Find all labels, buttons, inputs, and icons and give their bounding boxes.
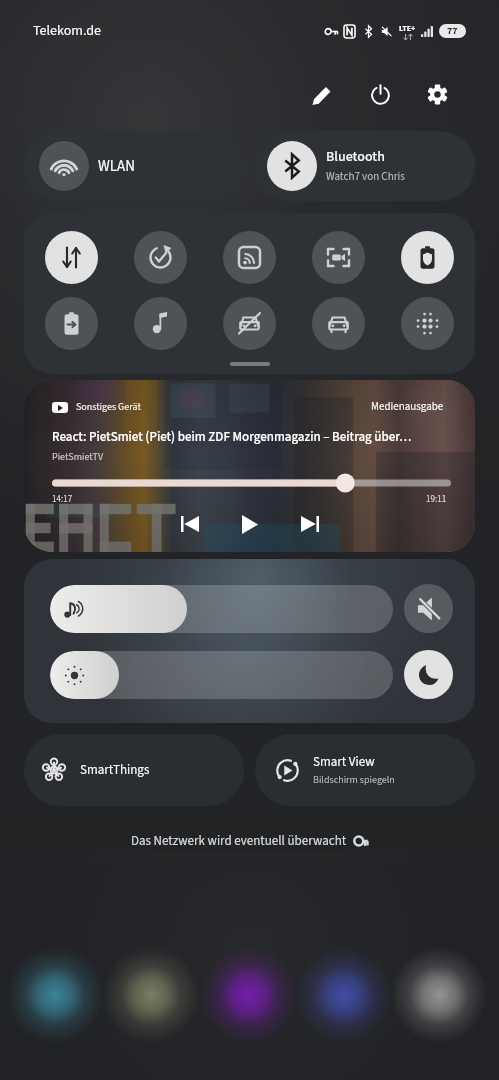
button[interactable]: Power off xyxy=(354,68,406,120)
button[interactable]: Bluetooth xyxy=(255,131,475,201)
button[interactable]: Battery protection xyxy=(401,231,454,284)
staticText: React: PietSmiet (Piet) beim ZDF Morgenm… xyxy=(52,428,451,447)
staticText: WLAN xyxy=(98,156,135,177)
button[interactable]: SmartThings xyxy=(24,734,244,806)
staticText: Watch7 von Chris xyxy=(326,169,405,185)
staticText: 14:17 xyxy=(52,493,73,506)
button[interactable]: Edit quick settings xyxy=(296,68,348,120)
button[interactable]: Settings xyxy=(411,68,463,120)
button[interactable]: Nearby share off xyxy=(223,297,276,350)
button[interactable]: Next xyxy=(291,505,329,543)
button[interactable]: Wireless power sharing xyxy=(45,297,98,350)
staticText: LTE+ xyxy=(399,23,416,34)
button[interactable]: WLAN xyxy=(24,131,244,201)
button[interactable]: Do not disturb xyxy=(404,650,453,699)
staticText: Telekom.de xyxy=(33,21,101,41)
button[interactable]: Previous xyxy=(171,505,209,543)
staticText: Bluetooth xyxy=(326,147,385,167)
button[interactable]: Driving mode xyxy=(312,297,365,350)
staticText: 19:11 xyxy=(426,493,447,506)
button[interactable]: Mute xyxy=(404,584,453,633)
staticText: Bildschirm spiegeln xyxy=(313,773,395,787)
staticText: Das Netzwerk wird eventuell überwacht xyxy=(131,832,347,851)
staticText: Sonstiges Gerät xyxy=(76,400,141,414)
staticText: SmartThings xyxy=(80,761,150,780)
button[interactable]: Auto rotate xyxy=(134,231,187,284)
button[interactable]: Mobile hotspot xyxy=(223,231,276,284)
button[interactable]: Data usage xyxy=(45,231,98,284)
button[interactable]: Play xyxy=(231,505,269,543)
staticText: Smart View xyxy=(313,753,375,772)
button[interactable]: More xyxy=(401,297,454,350)
staticText: PietSmietTV xyxy=(52,450,104,464)
button[interactable]: Smart View xyxy=(255,734,475,806)
button[interactable]: Music share xyxy=(134,297,187,350)
button[interactable]: Brightness xyxy=(50,651,393,699)
button[interactable]: Volume xyxy=(50,585,393,633)
button[interactable]: Medienausgabe xyxy=(371,399,447,415)
staticText: 77 xyxy=(447,24,458,38)
button[interactable]: Smart capture xyxy=(312,231,365,284)
